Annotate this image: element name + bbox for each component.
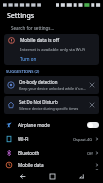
button[interactable]: Mobile data is off <box>4 34 99 65</box>
staticText: On-body detection <box>19 79 58 85</box>
staticText: Wi-Fi <box>18 136 73 142</box>
staticText: Turn on <box>20 56 37 62</box>
staticText: Ospazi-4G <box>73 137 93 142</box>
staticText: Mobile data <box>18 162 95 168</box>
staticText: Bluetooth <box>18 150 87 156</box>
staticText: Internet is available only via Wi-Fi <box>20 47 86 53</box>
staticText: Off <box>87 151 93 156</box>
staticText: Airplane mode <box>18 122 87 128</box>
button[interactable]: Turn on <box>20 56 37 62</box>
staticText: Silence device during specific times <box>19 106 79 111</box>
button[interactable]: Airplane mode <box>0 118 103 132</box>
staticText: Set Do Not Disturb <box>19 99 58 105</box>
staticText: Keep your device unlocked while it's on … <box>19 86 86 91</box>
button[interactable]: Set Do Not Disturb <box>4 96 99 114</box>
button[interactable]: Mobile data <box>0 160 103 170</box>
button[interactable]: Search for settings... <box>0 22 103 34</box>
button[interactable]: Bluetooth <box>0 146 103 160</box>
button[interactable]: On-body detection <box>4 76 99 94</box>
button[interactable]: Dismiss suggestion <box>88 81 96 89</box>
button[interactable]: Back <box>15 170 29 183</box>
staticText: Mobile data is off <box>20 37 59 44</box>
staticText: Search for settings... <box>11 25 55 31</box>
button[interactable]: Dismiss suggestion <box>88 101 96 109</box>
button[interactable]: Home <box>45 170 59 183</box>
button[interactable]: Wi-Fi <box>0 132 103 146</box>
button[interactable]: Recents <box>74 170 88 183</box>
staticText: Settings <box>7 11 35 21</box>
button[interactable]: Airplane mode toggle <box>87 122 99 128</box>
staticText: SUGGESTIONS (2) <box>6 69 40 74</box>
